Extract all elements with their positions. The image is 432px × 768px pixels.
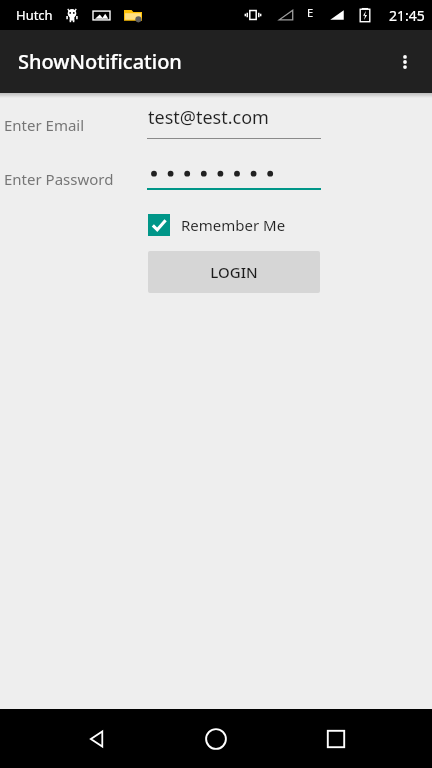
staticText: Hutch: [16, 6, 53, 24]
staticText: Enter Email: [4, 115, 85, 135]
staticText: Enter Password: [4, 169, 114, 189]
button[interactable]: Home: [192, 715, 240, 763]
staticText: Remember Me: [181, 215, 286, 235]
button[interactable]: [147, 160, 321, 190]
button[interactable]: More options: [381, 38, 429, 86]
staticText: 21:45: [389, 6, 425, 25]
staticText: test@test.com: [148, 105, 269, 130]
button[interactable]: Remember Me: [148, 208, 286, 242]
staticText: E: [307, 5, 314, 20]
button[interactable]: Recent apps: [312, 715, 360, 763]
button[interactable]: Back: [73, 715, 121, 763]
button[interactable]: LOGIN: [148, 251, 320, 293]
staticText: ShowNotification: [18, 48, 182, 75]
button[interactable]: test@test.com: [147, 105, 321, 139]
staticText: LOGIN: [210, 262, 258, 282]
